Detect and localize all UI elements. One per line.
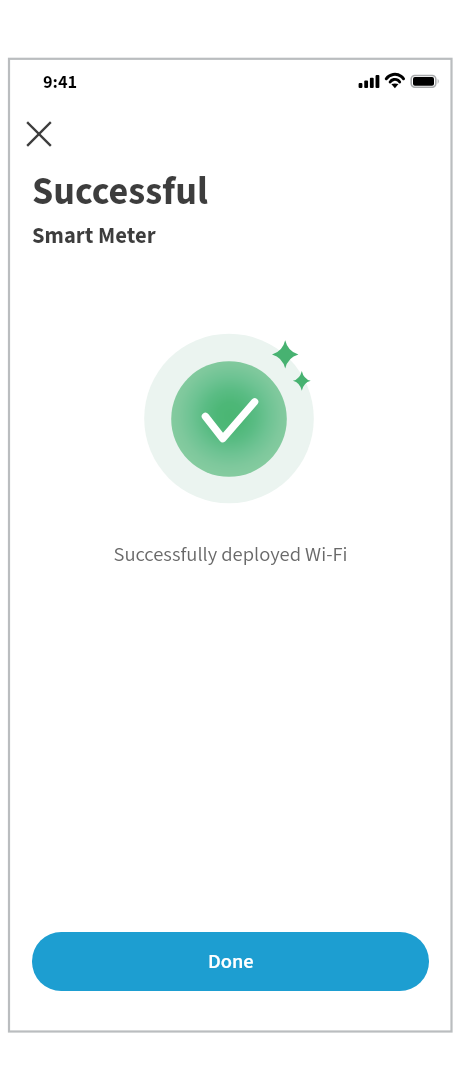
staticText: Smart Meter: [32, 220, 156, 252]
button[interactable]: Done: [32, 932, 429, 991]
staticText: 9:41: [43, 69, 78, 95]
staticText: Done: [208, 947, 254, 976]
staticText: Successful: [32, 165, 208, 219]
button[interactable]: Close: [17, 112, 61, 156]
staticText: Successfully deployed Wi-Fi: [9, 540, 452, 569]
